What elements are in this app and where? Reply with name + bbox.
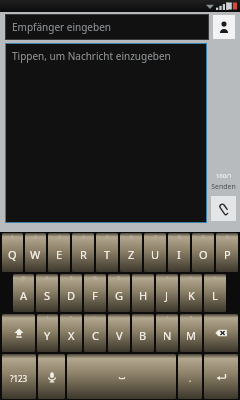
- staticText: 2: [34, 234, 37, 241]
- staticText: Q: [8, 247, 17, 262]
- button[interactable]: :: [108, 314, 130, 352]
- staticText: @: [21, 275, 26, 282]
- staticText: /: [166, 315, 168, 322]
- button[interactable]: #: [36, 274, 58, 312]
- button[interactable]: Löschen: [204, 314, 238, 352]
- button[interactable]: 4: [72, 233, 94, 272]
- button[interactable]: 6: [120, 233, 142, 272]
- staticText: Empfänger eingeben: [12, 20, 111, 34]
- staticText: T: [104, 247, 111, 262]
- staticText: V: [116, 328, 123, 343]
- staticText: !: [47, 315, 49, 322]
- staticText: %: [93, 275, 98, 282]
- staticText: -: [142, 275, 144, 282]
- staticText: Tippen, um Nachricht einzugeben: [12, 49, 171, 63]
- button[interactable]: ,: [178, 354, 202, 399]
- staticText: 0: [226, 234, 229, 241]
- staticText: M: [186, 328, 196, 343]
- button[interactable]: 5: [96, 233, 118, 272]
- staticText: G: [115, 288, 124, 303]
- button[interactable]: Leertaste: [67, 354, 176, 399]
- staticText: B: [139, 328, 147, 343]
- staticText: C: [92, 328, 99, 343]
- button[interactable]: 3: [48, 233, 70, 272]
- button[interactable]: Senden: [211, 182, 236, 192]
- button[interactable]: ?: [180, 314, 202, 352]
- staticText: 4: [82, 234, 85, 241]
- staticText: P: [224, 247, 231, 262]
- staticText: 1: [11, 234, 14, 241]
- button[interactable]: Empfänger eingeben: [6, 15, 208, 39]
- staticText: A: [20, 288, 28, 303]
- button[interactable]: 0: [216, 233, 238, 272]
- staticText: J: [165, 288, 169, 303]
- staticText: F: [92, 288, 98, 303]
- staticText: ": [70, 315, 73, 322]
- button[interactable]: ": [60, 314, 82, 352]
- staticText: Z: [128, 247, 135, 262]
- button[interactable]: !: [37, 314, 58, 352]
- button[interactable]: @: [13, 274, 34, 312]
- staticText: N: [163, 328, 172, 343]
- button[interactable]: 8: [168, 233, 190, 272]
- staticText: 5: [106, 234, 109, 241]
- staticText: X: [68, 328, 75, 343]
- button[interactable]: ?123: [2, 354, 36, 399]
- staticText: I: [177, 247, 181, 262]
- button[interactable]: -: [132, 274, 154, 312]
- button[interactable]: 9: [192, 233, 214, 272]
- staticText: E: [56, 247, 63, 262]
- staticText: :: [118, 315, 120, 322]
- staticText: ': [94, 315, 96, 322]
- staticText: S: [44, 288, 51, 303]
- staticText: &: [117, 275, 121, 282]
- button[interactable]: /: [156, 314, 178, 352]
- staticText: ;: [142, 315, 144, 322]
- staticText: ): [214, 275, 216, 282]
- staticText: .: [189, 373, 192, 384]
- staticText: (: [190, 275, 192, 282]
- button[interactable]: Tippen, um Nachricht einzugeben: [6, 44, 206, 222]
- staticText: L: [212, 288, 218, 303]
- staticText: ?123: [10, 373, 28, 384]
- staticText: 8: [178, 234, 181, 241]
- staticText: 7: [154, 234, 157, 241]
- staticText: 3: [58, 234, 61, 241]
- button[interactable]: ': [84, 314, 106, 352]
- button[interactable]: Spracheingabe: [38, 354, 65, 399]
- button[interactable]: Eingabe: [204, 354, 238, 399]
- button[interactable]: ;: [132, 314, 154, 352]
- staticText: W: [30, 247, 41, 262]
- staticText: K: [188, 288, 195, 303]
- button[interactable]: 7: [144, 233, 166, 272]
- staticText: #: [45, 275, 49, 282]
- staticText: Y: [44, 328, 51, 343]
- button[interactable]: +: [156, 274, 178, 312]
- staticText: 6: [130, 234, 133, 241]
- staticText: U: [151, 247, 160, 262]
- staticText: $: [70, 275, 73, 282]
- staticText: 160/1: [216, 172, 232, 180]
- staticText: ?: [190, 315, 193, 322]
- button[interactable]: (: [180, 274, 202, 312]
- button[interactable]: 1: [2, 233, 23, 272]
- staticText: O: [199, 247, 208, 262]
- button[interactable]: Anhang hinzufügen: [211, 196, 236, 221]
- staticText: ,: [189, 355, 191, 362]
- button[interactable]: $: [60, 274, 82, 312]
- staticText: R: [80, 247, 87, 262]
- staticText: 9: [202, 234, 205, 241]
- staticText: +: [166, 275, 169, 282]
- button[interactable]: Kontakt auswählen: [213, 15, 235, 39]
- button[interactable]: ): [204, 274, 226, 312]
- button[interactable]: %: [84, 274, 106, 312]
- button[interactable]: &: [108, 274, 130, 312]
- button[interactable]: Umschalttaste: [2, 314, 35, 352]
- button[interactable]: 2: [25, 233, 46, 272]
- staticText: H: [139, 288, 148, 303]
- staticText: D: [67, 288, 76, 303]
